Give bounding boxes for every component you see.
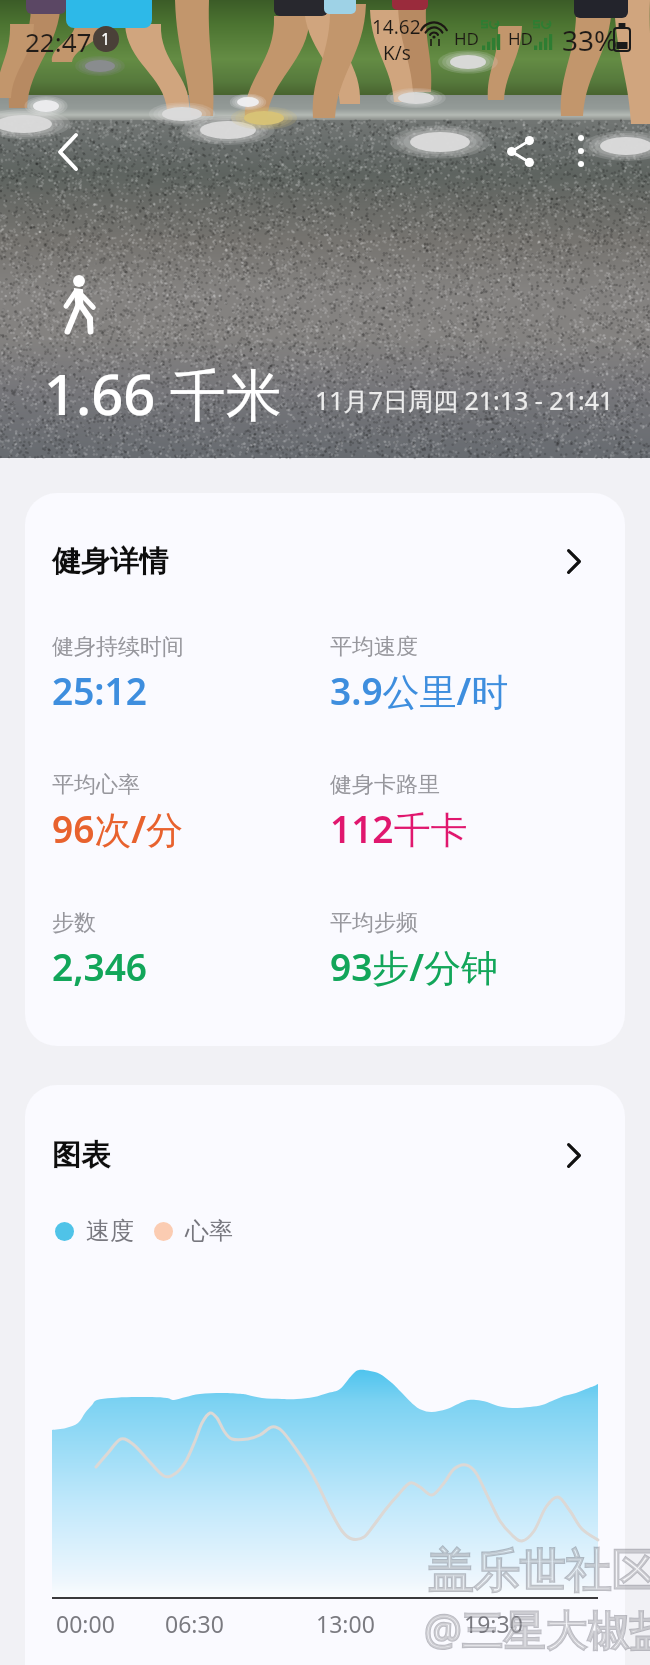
- button[interactable]: 图表: [25, 1085, 625, 1225]
- staticText: 13:00: [316, 1608, 375, 1639]
- staticText: 平均速度: [330, 633, 418, 661]
- staticText: 33%: [562, 21, 618, 59]
- staticText: 96次/分: [52, 803, 184, 854]
- staticText: @三星大椒盐: [424, 1600, 650, 1657]
- button[interactable]: Share: [480, 111, 560, 191]
- staticText: HD: [454, 27, 480, 50]
- staticText: 2,346: [52, 941, 147, 991]
- staticText: 22:47: [25, 24, 92, 59]
- staticText: K/s: [383, 40, 411, 66]
- button[interactable]: Back: [28, 112, 108, 192]
- staticText: 图表: [52, 1137, 110, 1174]
- staticText: 25:12: [52, 665, 147, 715]
- staticText: 盖乐世社区: [428, 1542, 650, 1600]
- button[interactable]: More options: [541, 111, 621, 191]
- staticText: 06:30: [165, 1608, 224, 1639]
- staticText: HD: [508, 27, 534, 50]
- staticText: 速度: [86, 1216, 134, 1246]
- button[interactable]: 健身详情: [25, 493, 625, 629]
- staticText: 3.9公里/时: [330, 665, 509, 716]
- staticText: 1.66 千米: [44, 355, 282, 431]
- staticText: 平均步频: [330, 909, 418, 937]
- staticText: 心率: [185, 1216, 233, 1246]
- staticText: 19:30: [464, 1608, 523, 1639]
- staticText: 112千卡: [330, 803, 468, 854]
- staticText: 健身持续时间: [52, 633, 184, 661]
- staticText: 1: [101, 28, 111, 50]
- staticText: 健身卡路里: [330, 771, 440, 799]
- staticText: 00:00: [56, 1608, 115, 1639]
- staticText: 步数: [52, 909, 96, 937]
- staticText: 平均心率: [52, 771, 140, 799]
- staticText: 14.62: [372, 14, 421, 40]
- staticText: 盖乐世社区: [428, 1542, 650, 1600]
- staticText: @三星大椒盐: [424, 1600, 650, 1657]
- staticText: 93步/分钟: [330, 941, 499, 992]
- staticText: 健身详情: [52, 543, 168, 580]
- staticText: 11月7日周四 21:13 - 21:41: [315, 383, 614, 417]
